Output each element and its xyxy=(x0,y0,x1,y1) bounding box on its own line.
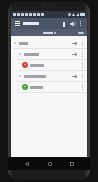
button[interactable]: More options xyxy=(79,62,85,68)
button[interactable]: More options xyxy=(77,20,84,27)
button[interactable]: Go to item xyxy=(11,49,87,59)
button[interactable]: Go to item xyxy=(71,51,78,58)
button[interactable]: More options xyxy=(11,60,87,70)
button[interactable]: More options xyxy=(11,82,87,92)
button[interactable]: Go to item xyxy=(11,38,87,48)
button[interactable]: More options xyxy=(79,40,85,46)
button[interactable]: Device xyxy=(60,20,68,28)
button[interactable]: More options xyxy=(79,51,85,57)
button[interactable]: More options xyxy=(79,84,85,90)
button[interactable] xyxy=(78,32,84,34)
button[interactable]: Home xyxy=(45,159,54,168)
button[interactable]: Go to item xyxy=(71,73,78,80)
button[interactable]: Go to item xyxy=(11,71,87,81)
button[interactable]: Back xyxy=(22,159,31,168)
button[interactable]: More options xyxy=(79,73,85,79)
button[interactable] xyxy=(42,32,57,34)
button[interactable]: Recent apps xyxy=(67,159,76,168)
button[interactable]: Go to item xyxy=(71,40,78,47)
button[interactable]: Open navigation drawer xyxy=(14,20,21,27)
button[interactable]: Volume xyxy=(68,19,77,28)
